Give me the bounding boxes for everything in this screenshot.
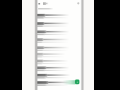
button[interactable]	[37, 36, 82, 43]
button[interactable]	[37, 12, 82, 19]
button[interactable]: Menu	[37, 1, 44, 8]
button[interactable]	[37, 51, 82, 58]
button[interactable]	[37, 58, 82, 65]
button[interactable]	[37, 20, 82, 27]
button[interactable]	[37, 79, 82, 86]
button[interactable]	[37, 44, 82, 51]
button[interactable]: Compose	[75, 79, 80, 84]
button[interactable]	[37, 65, 82, 72]
button[interactable]	[37, 29, 82, 36]
button[interactable]: Search	[75, 0, 82, 7]
button[interactable]	[37, 72, 82, 79]
